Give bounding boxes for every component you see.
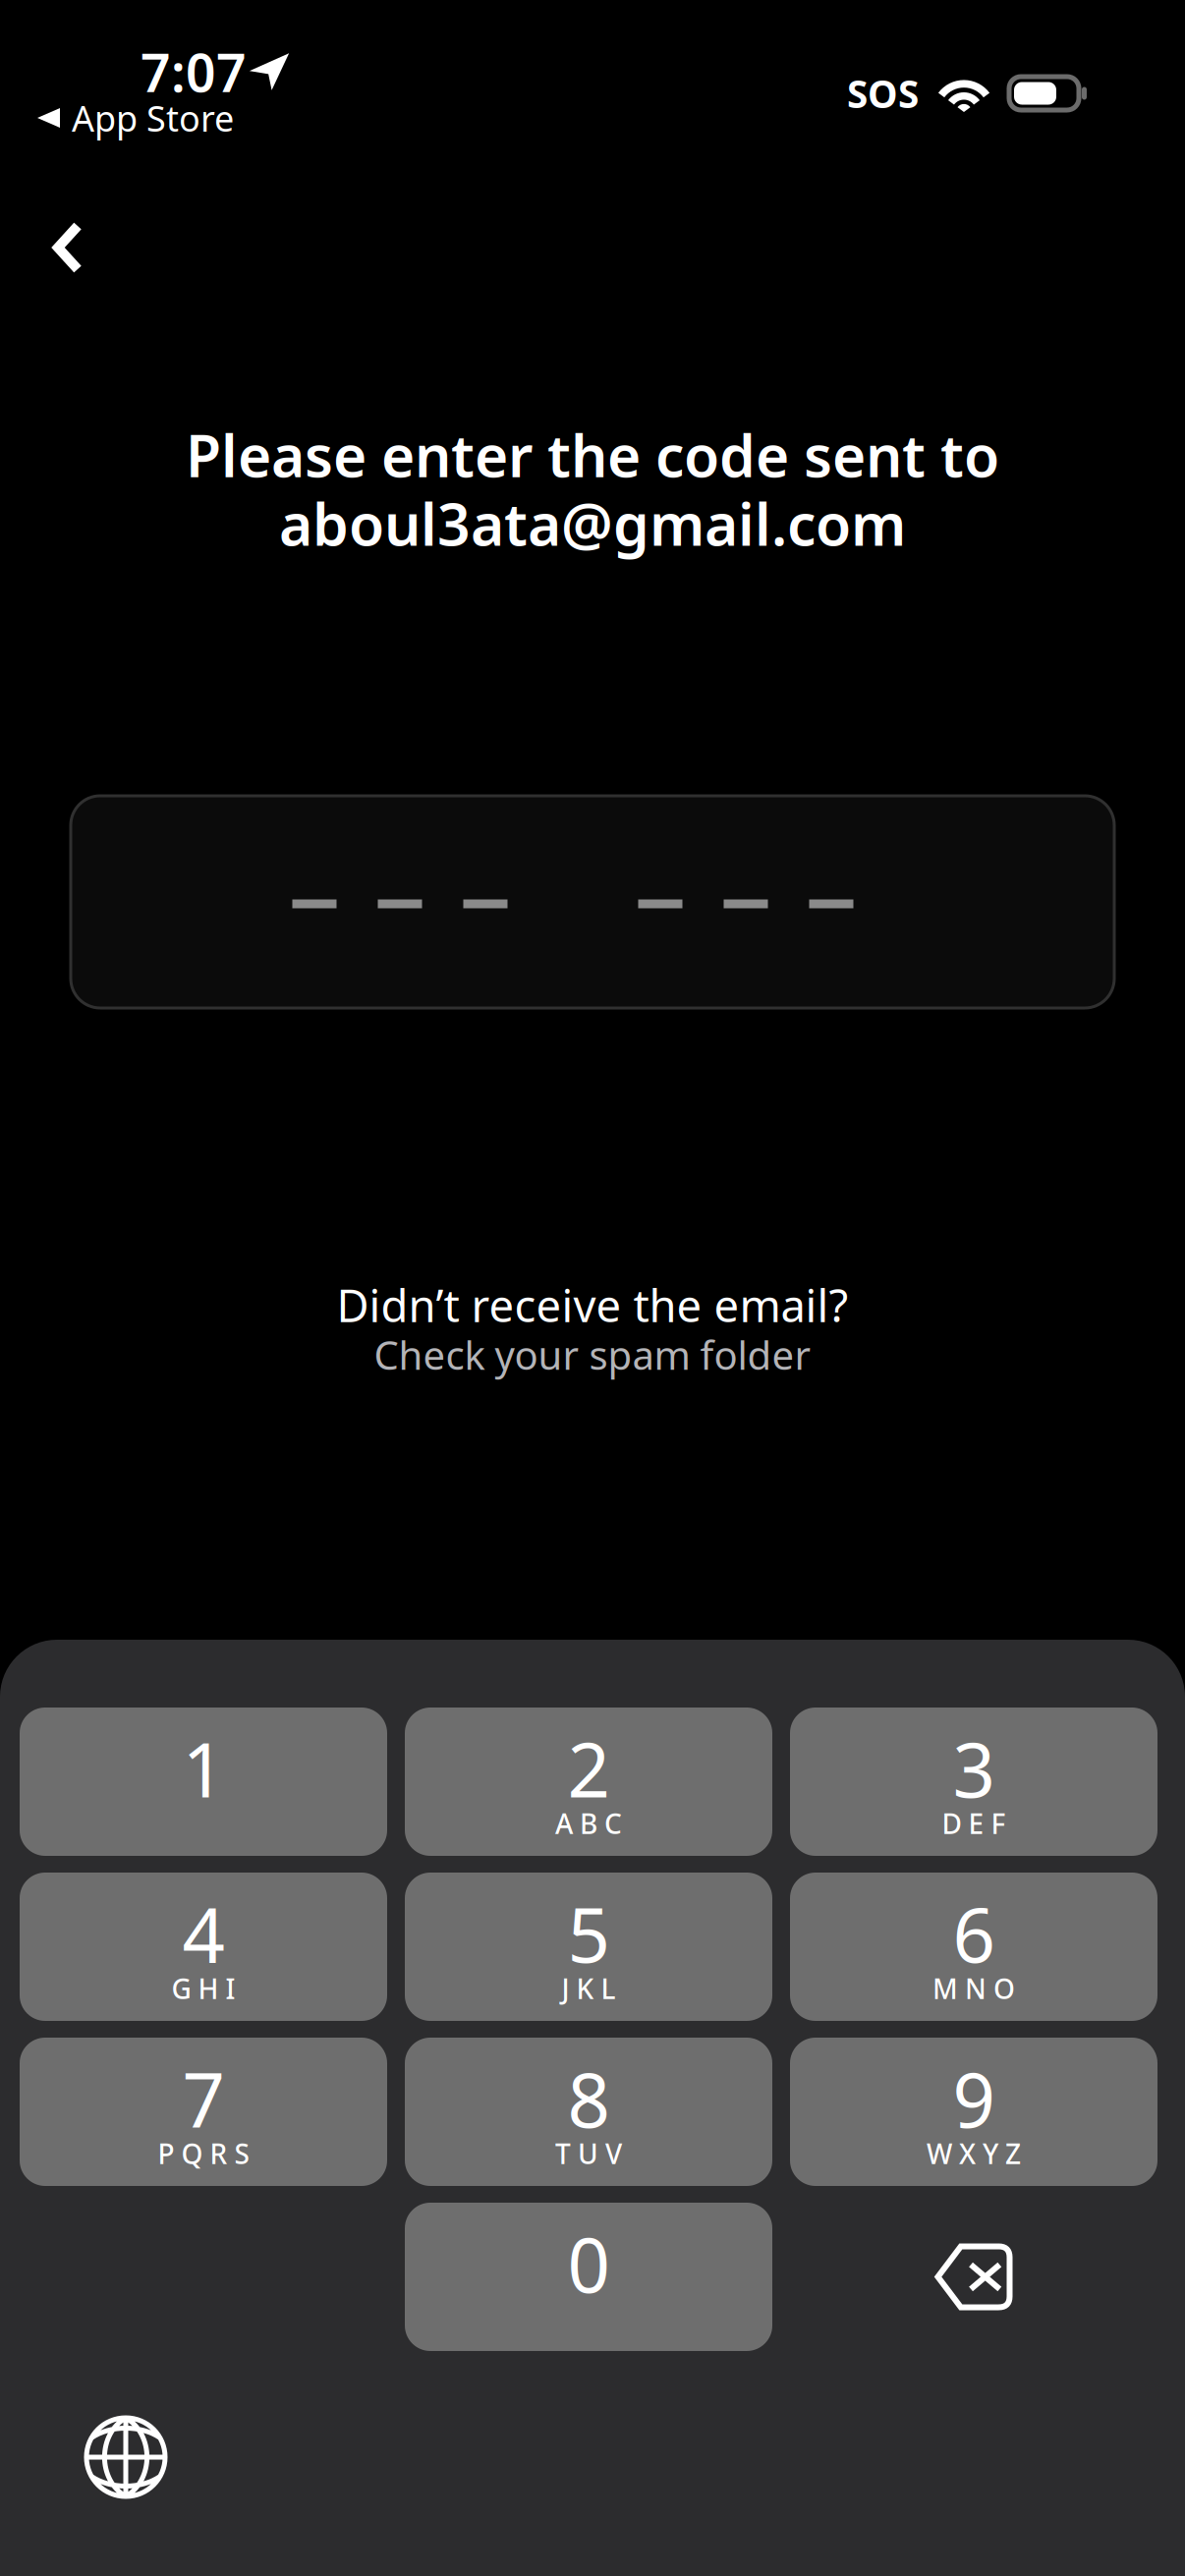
staticText: 1 [182, 1719, 225, 1818]
button[interactable]: Delete [790, 2203, 1157, 2351]
staticText: 0 [567, 2214, 610, 2313]
staticText: 7 [182, 2049, 225, 2148]
button[interactable]: 8 [405, 2038, 772, 2186]
staticText: 5 [567, 1884, 610, 1983]
staticText: G H I [171, 1970, 235, 2007]
button[interactable]: 4 [20, 1873, 387, 2021]
staticText: Check your spam folder [374, 1328, 811, 1381]
button[interactable]: 0 [405, 2203, 772, 2351]
staticText: SOS [847, 68, 919, 118]
staticText: Didn’t receive the email? [337, 1275, 848, 1334]
staticText: P Q R S [158, 2135, 249, 2172]
button[interactable]: Back [2, 183, 140, 310]
staticText: M N O [932, 1970, 1015, 2007]
staticText: aboul3ata@gmail.com [279, 485, 906, 562]
staticText: 2 [567, 1719, 610, 1818]
staticText: D E F [942, 1805, 1006, 1842]
button[interactable]: 7 [20, 2038, 387, 2186]
staticText: 4 [182, 1884, 225, 1983]
button[interactable]: Next keyboard [42, 2374, 209, 2541]
button[interactable]: 2 [405, 1708, 772, 1856]
button[interactable]: 9 [790, 2038, 1157, 2186]
staticText: 7:07 [141, 37, 247, 106]
staticText: 8 [567, 2049, 610, 2148]
button[interactable]: 1 [20, 1708, 387, 1856]
staticText: 6 [953, 1884, 995, 1983]
staticText: 9 [953, 2049, 995, 2148]
staticText: T U V [555, 2135, 622, 2172]
staticText: J K L [562, 1970, 616, 2007]
button[interactable]: 5 [405, 1873, 772, 2021]
staticText: App Store [72, 94, 234, 141]
staticText: Please enter the code sent to [186, 417, 999, 493]
button[interactable]: 6 [790, 1873, 1157, 2021]
staticText: 3 [953, 1719, 995, 1818]
button[interactable]: 3 [790, 1708, 1157, 1856]
staticText: A B C [555, 1805, 622, 1842]
staticText: W X Y Z [927, 2135, 1021, 2172]
